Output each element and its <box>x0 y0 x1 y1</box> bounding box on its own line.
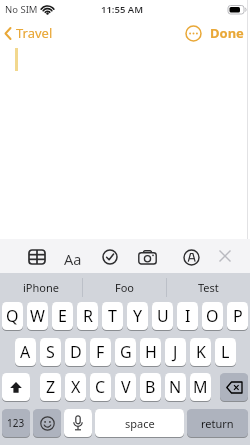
staticText: H <box>145 341 157 363</box>
button[interactable]: N <box>165 373 186 402</box>
button[interactable] <box>28 249 46 265</box>
button[interactable] <box>102 249 118 265</box>
button[interactable]: J <box>165 338 186 367</box>
staticText: 123 <box>7 416 25 430</box>
button[interactable]: O <box>202 302 223 331</box>
staticText: iPhone <box>23 280 59 295</box>
button[interactable]: T <box>102 302 123 331</box>
button[interactable]: Aa <box>63 249 83 265</box>
button[interactable]: E <box>52 302 73 331</box>
button[interactable] <box>33 409 61 438</box>
button[interactable]: I <box>177 302 198 331</box>
staticText: B <box>145 376 156 398</box>
staticText: Aa <box>64 249 82 265</box>
button[interactable]: W <box>27 302 48 331</box>
button[interactable] <box>183 249 200 266</box>
button[interactable]: D <box>65 338 86 367</box>
staticText: Travel <box>16 24 53 42</box>
staticText: L <box>221 341 230 363</box>
staticText: R <box>83 305 93 327</box>
button[interactable]: iPhone <box>0 273 82 302</box>
staticText: D <box>70 341 82 363</box>
button[interactable]: S <box>40 338 61 367</box>
button[interactable]: H <box>140 338 161 367</box>
button[interactable]: 123 <box>2 409 30 438</box>
staticText: C <box>95 376 106 398</box>
button[interactable]: V <box>115 373 136 402</box>
button[interactable]: Q <box>2 302 23 331</box>
staticText: S <box>46 341 55 363</box>
staticText: V <box>121 376 131 398</box>
staticText: Done <box>210 24 244 42</box>
staticText: Y <box>133 305 143 327</box>
button[interactable] <box>64 409 92 438</box>
staticText: Z <box>46 376 56 398</box>
button[interactable]: G <box>115 338 136 367</box>
staticText: P <box>233 305 243 327</box>
staticText: W <box>30 305 45 327</box>
staticText: E <box>58 305 67 327</box>
button[interactable]: X <box>65 373 86 402</box>
button[interactable]: return <box>187 409 248 438</box>
staticText: A <box>20 341 31 363</box>
button[interactable]: Foo <box>83 273 166 302</box>
button[interactable]: A <box>15 338 36 367</box>
button[interactable]: L <box>215 338 236 367</box>
staticText: M <box>193 376 208 398</box>
staticText: G <box>120 341 132 363</box>
staticText: I <box>185 305 191 327</box>
button[interactable] <box>220 373 248 402</box>
staticText: N <box>169 376 182 398</box>
staticText: U <box>157 305 169 327</box>
button[interactable]: U <box>152 302 173 331</box>
staticText: 11:55 AM <box>101 3 144 16</box>
button[interactable]: Z <box>40 373 61 402</box>
button[interactable]: R <box>77 302 98 331</box>
staticText: K <box>196 341 206 363</box>
button[interactable]: F <box>90 338 111 367</box>
button[interactable]: Y <box>127 302 148 331</box>
button[interactable]: B <box>140 373 161 402</box>
button[interactable]: Travel <box>4 24 53 42</box>
button[interactable] <box>138 250 157 265</box>
staticText: No SIM <box>5 3 38 16</box>
button[interactable] <box>185 25 202 42</box>
staticText: O <box>206 305 219 327</box>
button[interactable]: Test <box>167 273 250 302</box>
staticText: return <box>201 416 234 431</box>
button[interactable]: space <box>95 409 184 438</box>
staticText: Test <box>198 280 219 295</box>
staticText: Q <box>6 305 19 327</box>
button[interactable]: P <box>227 302 248 331</box>
button[interactable]: K <box>190 338 211 367</box>
staticText: Foo <box>115 280 135 295</box>
button[interactable]: C <box>90 373 111 402</box>
staticText: T <box>108 305 117 327</box>
button[interactable]: M <box>190 373 211 402</box>
staticText: F <box>96 341 105 363</box>
staticText: J <box>173 341 178 363</box>
button[interactable] <box>218 249 232 263</box>
staticText: X <box>71 376 81 398</box>
button[interactable] <box>2 373 30 402</box>
staticText: space <box>125 416 155 431</box>
button[interactable]: Done <box>210 24 244 42</box>
